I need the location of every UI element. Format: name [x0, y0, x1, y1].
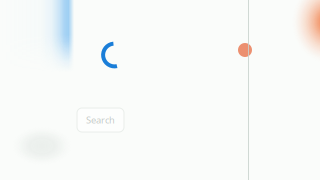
- button[interactable]: Search: [77, 108, 124, 132]
- staticText: Search: [86, 114, 115, 126]
